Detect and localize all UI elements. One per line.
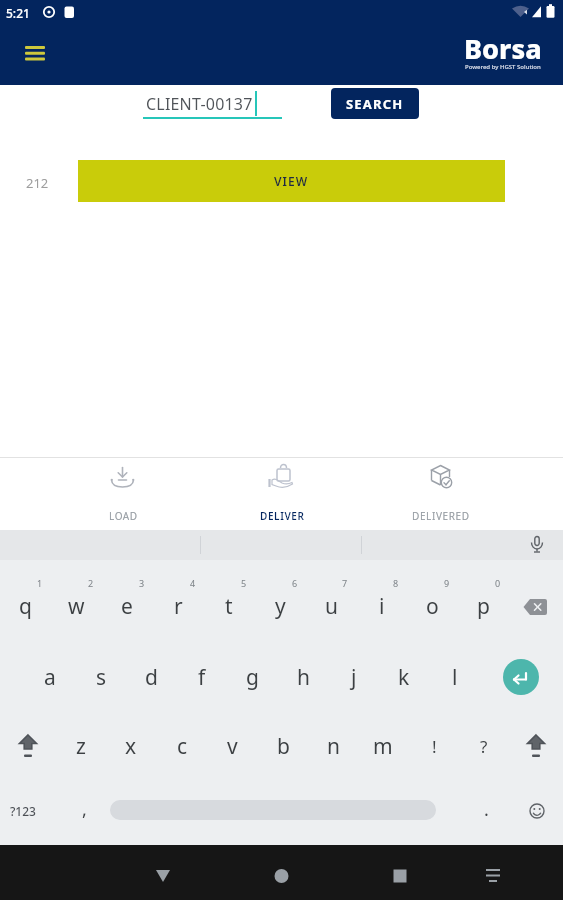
button[interactable]: ! [410,726,458,766]
staticText: 1 [37,577,43,589]
staticText: ?123 [10,803,36,819]
staticText: t [225,592,233,621]
button[interactable]: , [60,789,108,829]
button[interactable]: ?123 [0,791,47,831]
button[interactable]: p [459,586,507,626]
button[interactable]: r [154,586,202,626]
button[interactable]: u [307,586,355,626]
staticText: q [19,592,32,621]
staticText: 3 [139,577,145,589]
button[interactable]: g [228,657,276,697]
staticText: u [325,592,338,621]
staticText: 6 [292,577,298,589]
button[interactable]: c [158,726,206,766]
staticText: x [125,732,137,761]
button[interactable] [202,458,361,530]
staticText: r [174,592,183,621]
button[interactable] [470,855,516,897]
button[interactable] [512,726,560,766]
staticText: w [68,592,85,621]
button[interactable]: SEARCH [331,88,419,119]
staticText: 212 [26,174,49,192]
button[interactable] [4,726,52,766]
button[interactable] [513,791,561,831]
button[interactable]: n [309,726,357,766]
staticText: ? [480,735,488,758]
staticText: g [246,663,259,692]
staticText: 5 [241,577,247,589]
button[interactable]: l [431,657,479,697]
staticText: SEARCH [346,95,404,113]
staticText: Borsa [464,30,542,67]
button[interactable]: VIEW [78,160,505,202]
staticText: CLIENT-00137 [146,93,253,115]
button[interactable] [522,530,552,560]
staticText: 7 [342,577,348,589]
staticText: n [327,732,340,761]
staticText: k [398,663,410,692]
button[interactable]: v [208,726,256,766]
staticText: j [351,663,357,692]
staticText: LOAD [109,509,138,523]
button[interactable] [43,458,202,530]
staticText: 9 [444,577,450,589]
button[interactable] [377,855,423,897]
button[interactable]: x [107,726,155,766]
button[interactable]: m [359,726,407,766]
staticText: 2 [88,577,94,589]
button[interactable]: . [462,789,510,829]
staticText: VIEW [274,173,309,189]
button[interactable]: d [127,657,175,697]
staticText: h [297,663,310,692]
button[interactable]: j [330,657,378,697]
button[interactable]: k [380,657,428,697]
staticText: 8 [393,577,399,589]
staticText: c [177,732,188,761]
staticText: 4 [190,577,196,589]
button[interactable] [258,855,304,897]
staticText: . [484,797,489,822]
button[interactable] [18,38,52,68]
button[interactable] [140,855,186,897]
staticText: l [452,663,458,692]
button[interactable]: h [279,657,327,697]
staticText: f [198,663,206,692]
staticText: z [76,732,86,761]
staticText: s [96,663,107,692]
button[interactable]: w [52,586,100,626]
button[interactable]: s [77,657,125,697]
staticText: ! [432,735,437,758]
staticText: m [373,732,393,761]
button[interactable] [511,586,559,626]
button[interactable]: b [259,726,307,766]
button[interactable]: y [256,586,304,626]
staticText: d [145,663,158,692]
button[interactable]: e [103,586,151,626]
staticText: DELIVERED [412,509,470,523]
staticText: , [82,797,87,822]
staticText: v [227,732,238,761]
staticText: p [477,592,490,621]
button[interactable] [503,659,539,695]
staticText: y [275,592,286,621]
button[interactable]: o [408,586,456,626]
button[interactable]: q [1,586,49,626]
button[interactable] [361,458,520,530]
staticText: a [44,663,56,692]
button[interactable]: t [205,586,253,626]
staticText: 0 [495,577,501,589]
staticText: DELIVER [260,509,305,523]
staticText: 5:21 [6,5,30,21]
button[interactable]: f [178,657,226,697]
staticText: b [277,732,290,761]
button[interactable]: i [358,586,406,626]
staticText: Powered by HGST Solution [465,63,541,71]
staticText: e [121,592,133,621]
button[interactable]: z [57,726,105,766]
button[interactable]: ? [460,726,508,766]
staticText: i [379,592,385,621]
button[interactable]: a [26,657,74,697]
staticText: o [426,592,439,621]
